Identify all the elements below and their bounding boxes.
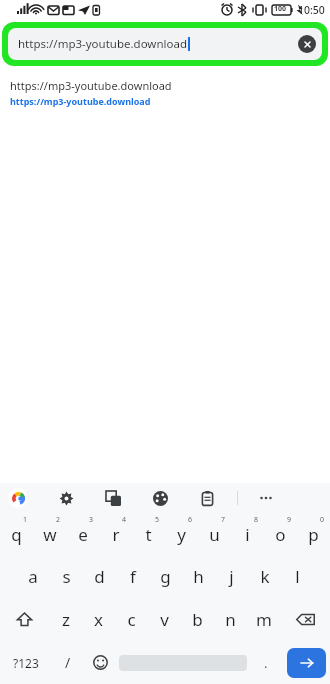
staticText: 0 [320,515,325,525]
staticText: 7 [221,515,226,525]
staticText: a [28,565,38,588]
staticText: https://mp3-youtube.download [18,36,187,52]
button[interactable]: Clipboard [197,488,217,508]
staticText: z [62,608,70,631]
staticText: x [94,608,103,631]
button[interactable]: Theme [150,488,170,508]
staticText: f [130,565,136,588]
staticText: y [177,523,186,546]
button[interactable]: n [214,598,247,641]
staticText: e [78,523,88,546]
staticText: k [260,565,270,588]
button[interactable]: h [182,555,215,598]
button[interactable]: u [198,513,231,555]
staticText: i [245,523,250,546]
staticText: n [225,608,236,631]
button[interactable]: d [83,555,116,598]
button[interactable]: f [116,555,149,598]
staticText: u [209,523,220,546]
staticText: ?123 [13,655,39,671]
staticText: j [229,565,234,588]
button[interactable]: Settings [56,488,76,508]
button[interactable]: x [82,598,115,641]
button[interactable]: Enter [283,641,330,684]
staticText: p [308,523,319,546]
button[interactable]: j [215,555,248,598]
staticText: 6 [188,515,193,525]
staticText: https://mp3-youtube.download [10,95,151,107]
staticText: g [160,565,171,588]
button[interactable]: k [248,555,281,598]
staticText: 2 [56,515,61,525]
staticText: o [275,523,286,546]
button[interactable]: g [149,555,182,598]
button[interactable]: https://mp3-youtube.download [10,78,330,107]
button[interactable]: ?123 [0,641,52,684]
staticText: r [112,523,120,546]
button[interactable]: Google [8,488,28,508]
staticText: 5 [155,515,160,525]
staticText: l [295,565,300,588]
staticText: c [127,608,136,631]
button[interactable]: Emoji [84,641,116,684]
button[interactable]: . [249,641,283,684]
staticText: 10:50 [298,3,325,17]
staticText: 3 [89,515,94,525]
button[interactable]: Space [116,641,249,684]
staticText: s [62,565,71,588]
button[interactable]: z [49,598,82,641]
button[interactable]: i [231,513,264,555]
button[interactable]: w [33,513,66,555]
staticText: b [192,608,203,631]
staticText: v [160,608,169,631]
staticText: . [264,654,268,672]
button[interactable]: More options [256,488,276,508]
staticText: 8 [254,515,259,525]
button[interactable]: b [181,598,214,641]
staticText: 100 [274,4,287,14]
staticText: t [145,523,152,546]
staticText: 9 [287,515,292,525]
button[interactable]: p [297,513,330,555]
staticText: d [94,565,105,588]
button[interactable]: https://mp3-youtube.download [8,28,322,60]
staticText: 1 [23,515,28,525]
staticText: q [11,523,22,546]
button[interactable]: e [66,513,99,555]
button[interactable]: s [50,555,83,598]
staticText: h [193,565,204,588]
staticText: 4 [122,515,127,525]
button[interactable]: a [16,555,50,598]
button[interactable]: o [264,513,297,555]
staticText: / [65,653,71,672]
button[interactable]: y [165,513,198,555]
button[interactable]: m [247,598,280,641]
staticText: https://mp3-youtube.download [10,78,172,93]
button[interactable]: r [99,513,132,555]
button[interactable]: Clear text [298,35,316,53]
staticText: m [256,608,272,631]
button[interactable]: l [281,555,314,598]
button[interactable]: Backspace [280,598,330,641]
button[interactable]: Shift [0,598,49,641]
button[interactable]: q [0,513,33,555]
button[interactable]: t [132,513,165,555]
button[interactable]: c [115,598,148,641]
button[interactable]: v [148,598,181,641]
button[interactable]: / [52,641,84,684]
button[interactable]: Translate [103,488,123,508]
staticText: w [43,523,57,546]
